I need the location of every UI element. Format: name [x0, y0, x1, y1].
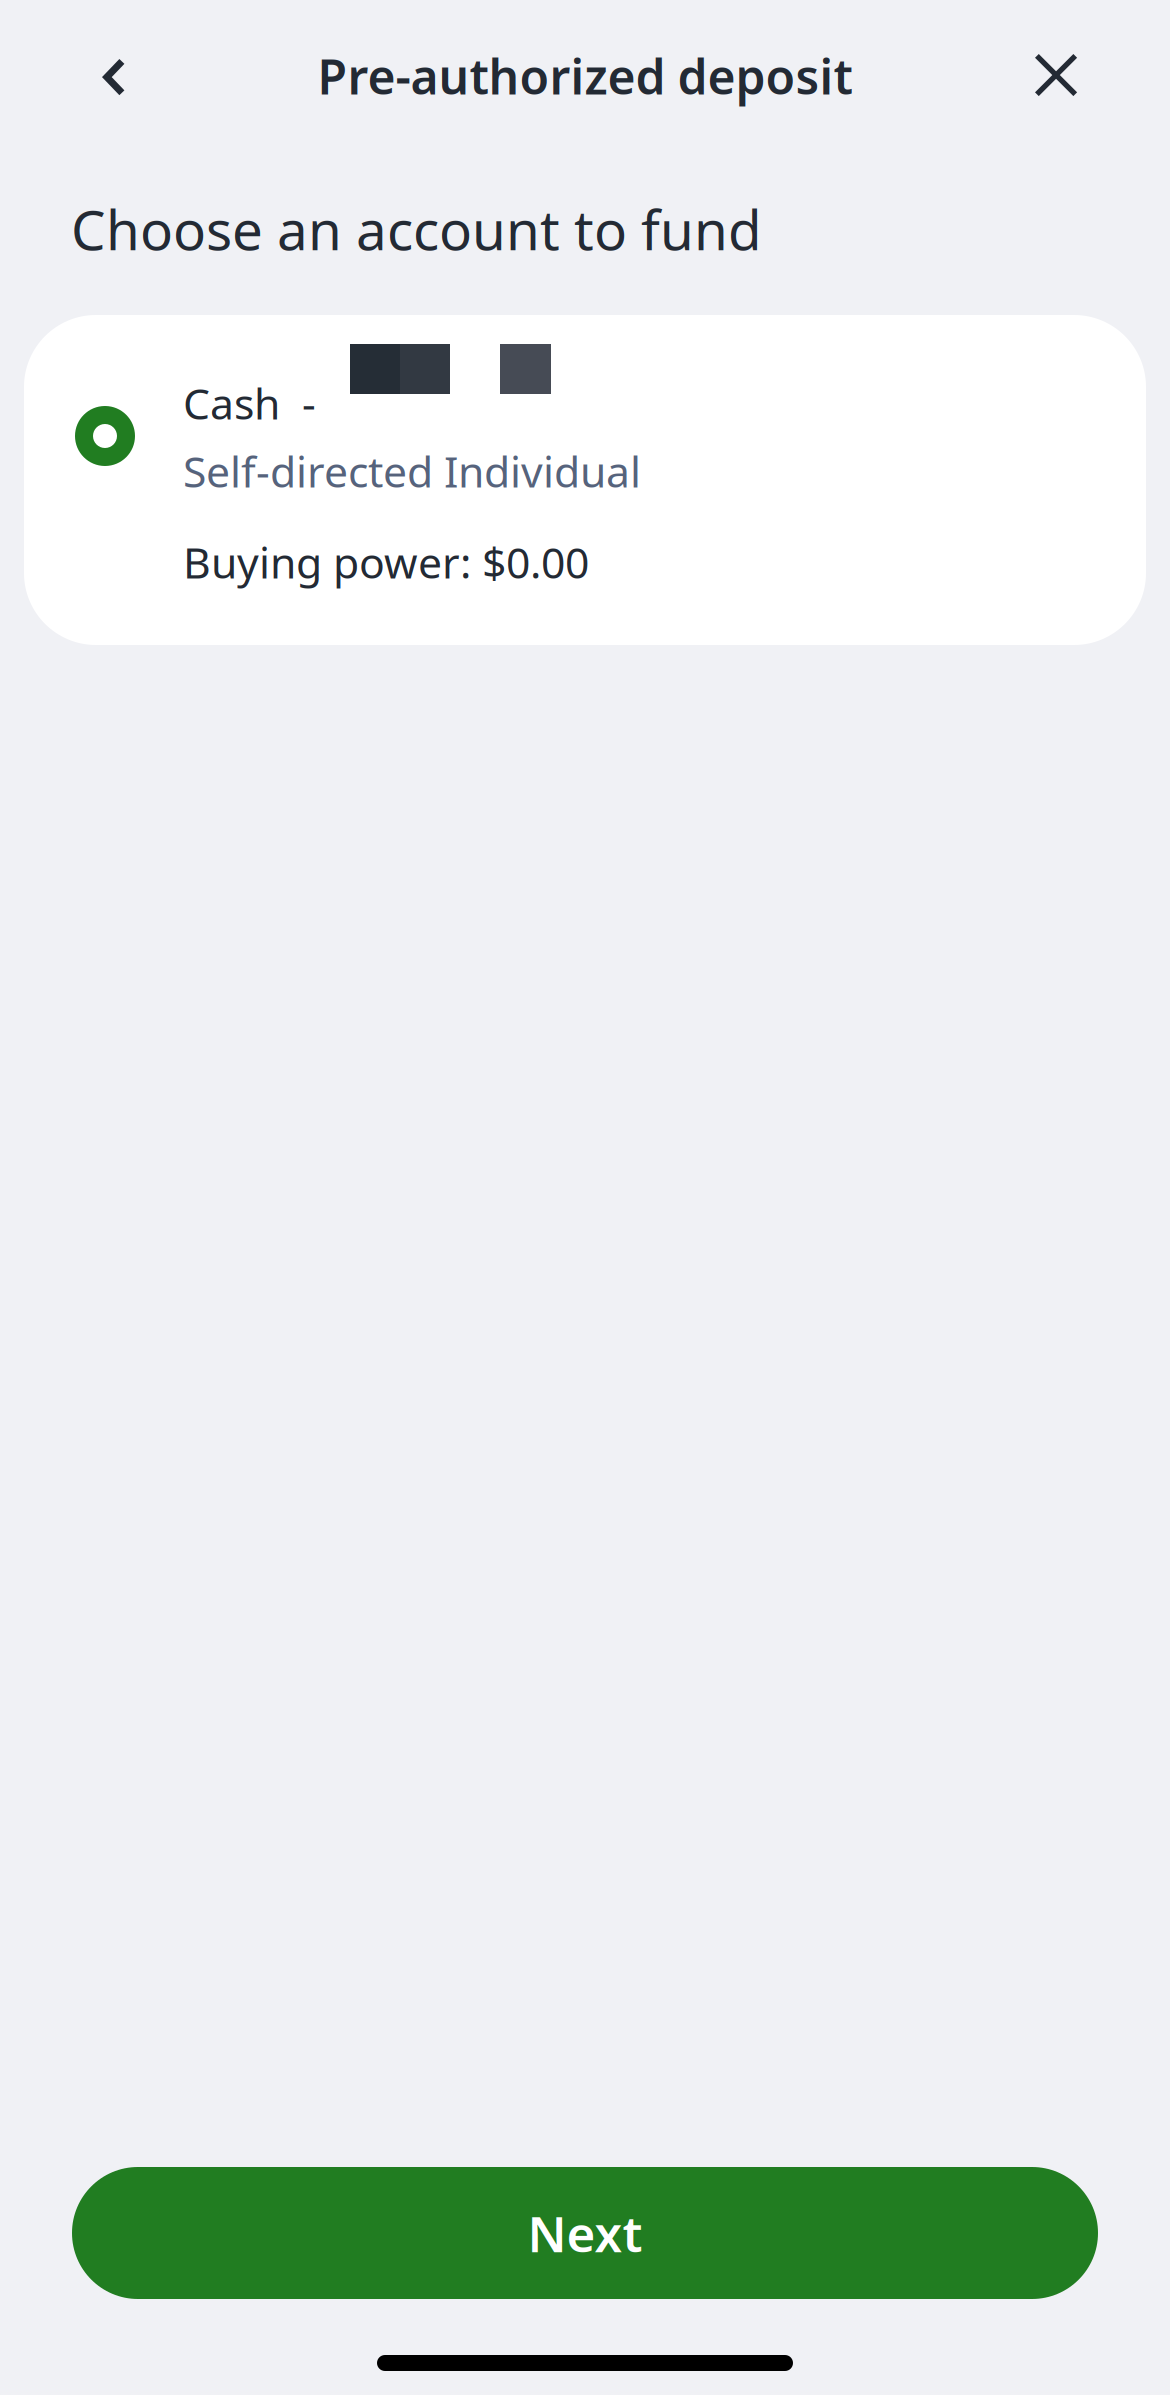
staticText: Next [527, 2200, 642, 2266]
button[interactable]: Close [998, 17, 1114, 135]
staticText: Pre-authorized deposit [317, 44, 852, 108]
staticText: Cash [183, 375, 280, 431]
button[interactable]: Back [60, 17, 176, 135]
staticText: Buying power: $0.00 [183, 534, 589, 590]
staticText: - [302, 375, 316, 431]
button[interactable]: Next [72, 2167, 1098, 2299]
staticText: Self-directed Individual [183, 443, 641, 499]
button[interactable]: Cash [24, 315, 1146, 645]
staticText: Choose an account to fund [71, 193, 762, 265]
